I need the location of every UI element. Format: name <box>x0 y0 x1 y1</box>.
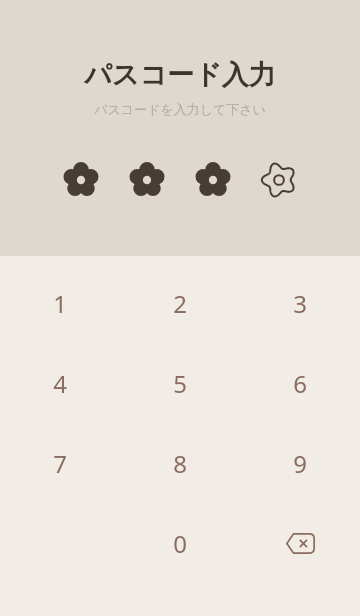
button[interactable]: 2 <box>120 263 240 343</box>
button[interactable]: 6 <box>240 343 360 423</box>
staticText: 3 <box>293 287 307 320</box>
staticText: 8 <box>173 447 187 480</box>
button[interactable]: 0 <box>120 503 240 583</box>
button[interactable]: 1 <box>0 263 120 343</box>
button[interactable]: 9 <box>240 423 360 503</box>
staticText: 4 <box>53 367 67 400</box>
button[interactable]: 7 <box>0 423 120 503</box>
staticText: 5 <box>173 367 187 400</box>
staticText: パスコードを入力して下さい <box>94 101 266 117</box>
staticText: 9 <box>293 447 307 480</box>
staticText: 7 <box>53 447 67 480</box>
button[interactable]: Backspace <box>240 503 360 583</box>
button[interactable]: 4 <box>0 343 120 423</box>
button[interactable]: 3 <box>240 263 360 343</box>
staticText: 1 <box>53 287 67 320</box>
staticText: 0 <box>173 527 187 560</box>
staticText: 6 <box>293 367 307 400</box>
button[interactable]: 8 <box>120 423 240 503</box>
staticText: パスコード入力 <box>84 58 276 92</box>
button[interactable]: 5 <box>120 343 240 423</box>
staticText: 2 <box>173 287 187 320</box>
